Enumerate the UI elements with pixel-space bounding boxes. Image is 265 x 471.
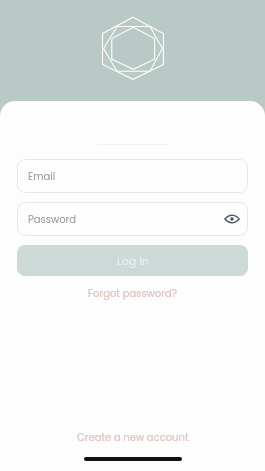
button[interactable]: Log in — [17, 245, 248, 276]
staticText: Create a new account — [77, 430, 189, 444]
button[interactable]: Show password — [220, 207, 244, 231]
button[interactable]: Password — [17, 202, 248, 236]
staticText: Password — [28, 212, 77, 226]
staticText: Forgot password? — [88, 286, 177, 300]
button[interactable]: Email — [17, 159, 248, 193]
staticText: Log in — [117, 253, 149, 268]
button[interactable]: Forgot password? — [82, 284, 183, 302]
staticText: Email — [28, 169, 56, 183]
button[interactable]: Create a new account — [71, 428, 195, 446]
